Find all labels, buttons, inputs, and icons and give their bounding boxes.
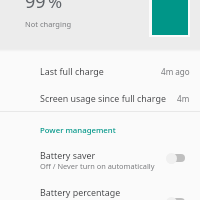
button[interactable]: Battery saver [0,141,200,175]
staticText: 99 [25,0,46,14]
staticText: Screen usage since full charge [40,92,177,104]
staticText: 4m ago [161,66,190,77]
button[interactable]: Toggle off [166,152,184,164]
staticText: Last full charge [40,65,161,77]
button[interactable]: Battery usage graph [149,0,190,37]
button[interactable]: Last full charge [0,60,200,82]
staticText: Off / Never turn on automatically [40,161,155,171]
button[interactable]: Screen usage since full charge [0,87,200,109]
staticText: Power management [40,125,116,136]
staticText: 4m [177,93,190,104]
staticText: % [48,0,63,13]
staticText: Not charging [25,19,72,29]
button[interactable]: Toggle off [166,196,184,200]
staticText: Battery saver [40,149,96,161]
button[interactable]: Battery percentage [0,178,200,200]
staticText: Battery percentage [40,186,166,198]
